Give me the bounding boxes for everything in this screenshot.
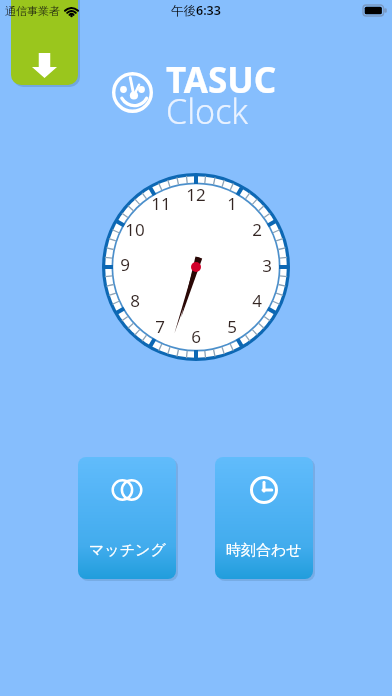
staticText: 4 [252, 289, 262, 311]
staticText: 8 [130, 289, 140, 311]
staticText: 3 [262, 254, 272, 276]
staticText: マッチング [89, 541, 166, 560]
staticText: 時刻合わせ [226, 541, 302, 560]
button[interactable]: Download [11, 0, 78, 85]
staticText: 6 [191, 325, 201, 347]
staticText: 5 [227, 315, 237, 337]
staticText: Clock [166, 88, 249, 134]
staticText: 12 [186, 183, 206, 205]
staticText: 11 [151, 192, 171, 214]
button[interactable]: Matching [78, 457, 176, 579]
staticText: TASUC [166, 56, 277, 104]
staticText: 通信事業者 [5, 4, 60, 18]
staticText: 午後6:33 [171, 2, 221, 19]
staticText: 10 [125, 218, 145, 240]
staticText: 2 [252, 218, 262, 240]
button[interactable]: Set time [215, 457, 313, 579]
staticText: 1 [227, 192, 237, 214]
staticText: 9 [120, 253, 130, 275]
staticText: 7 [155, 315, 165, 337]
